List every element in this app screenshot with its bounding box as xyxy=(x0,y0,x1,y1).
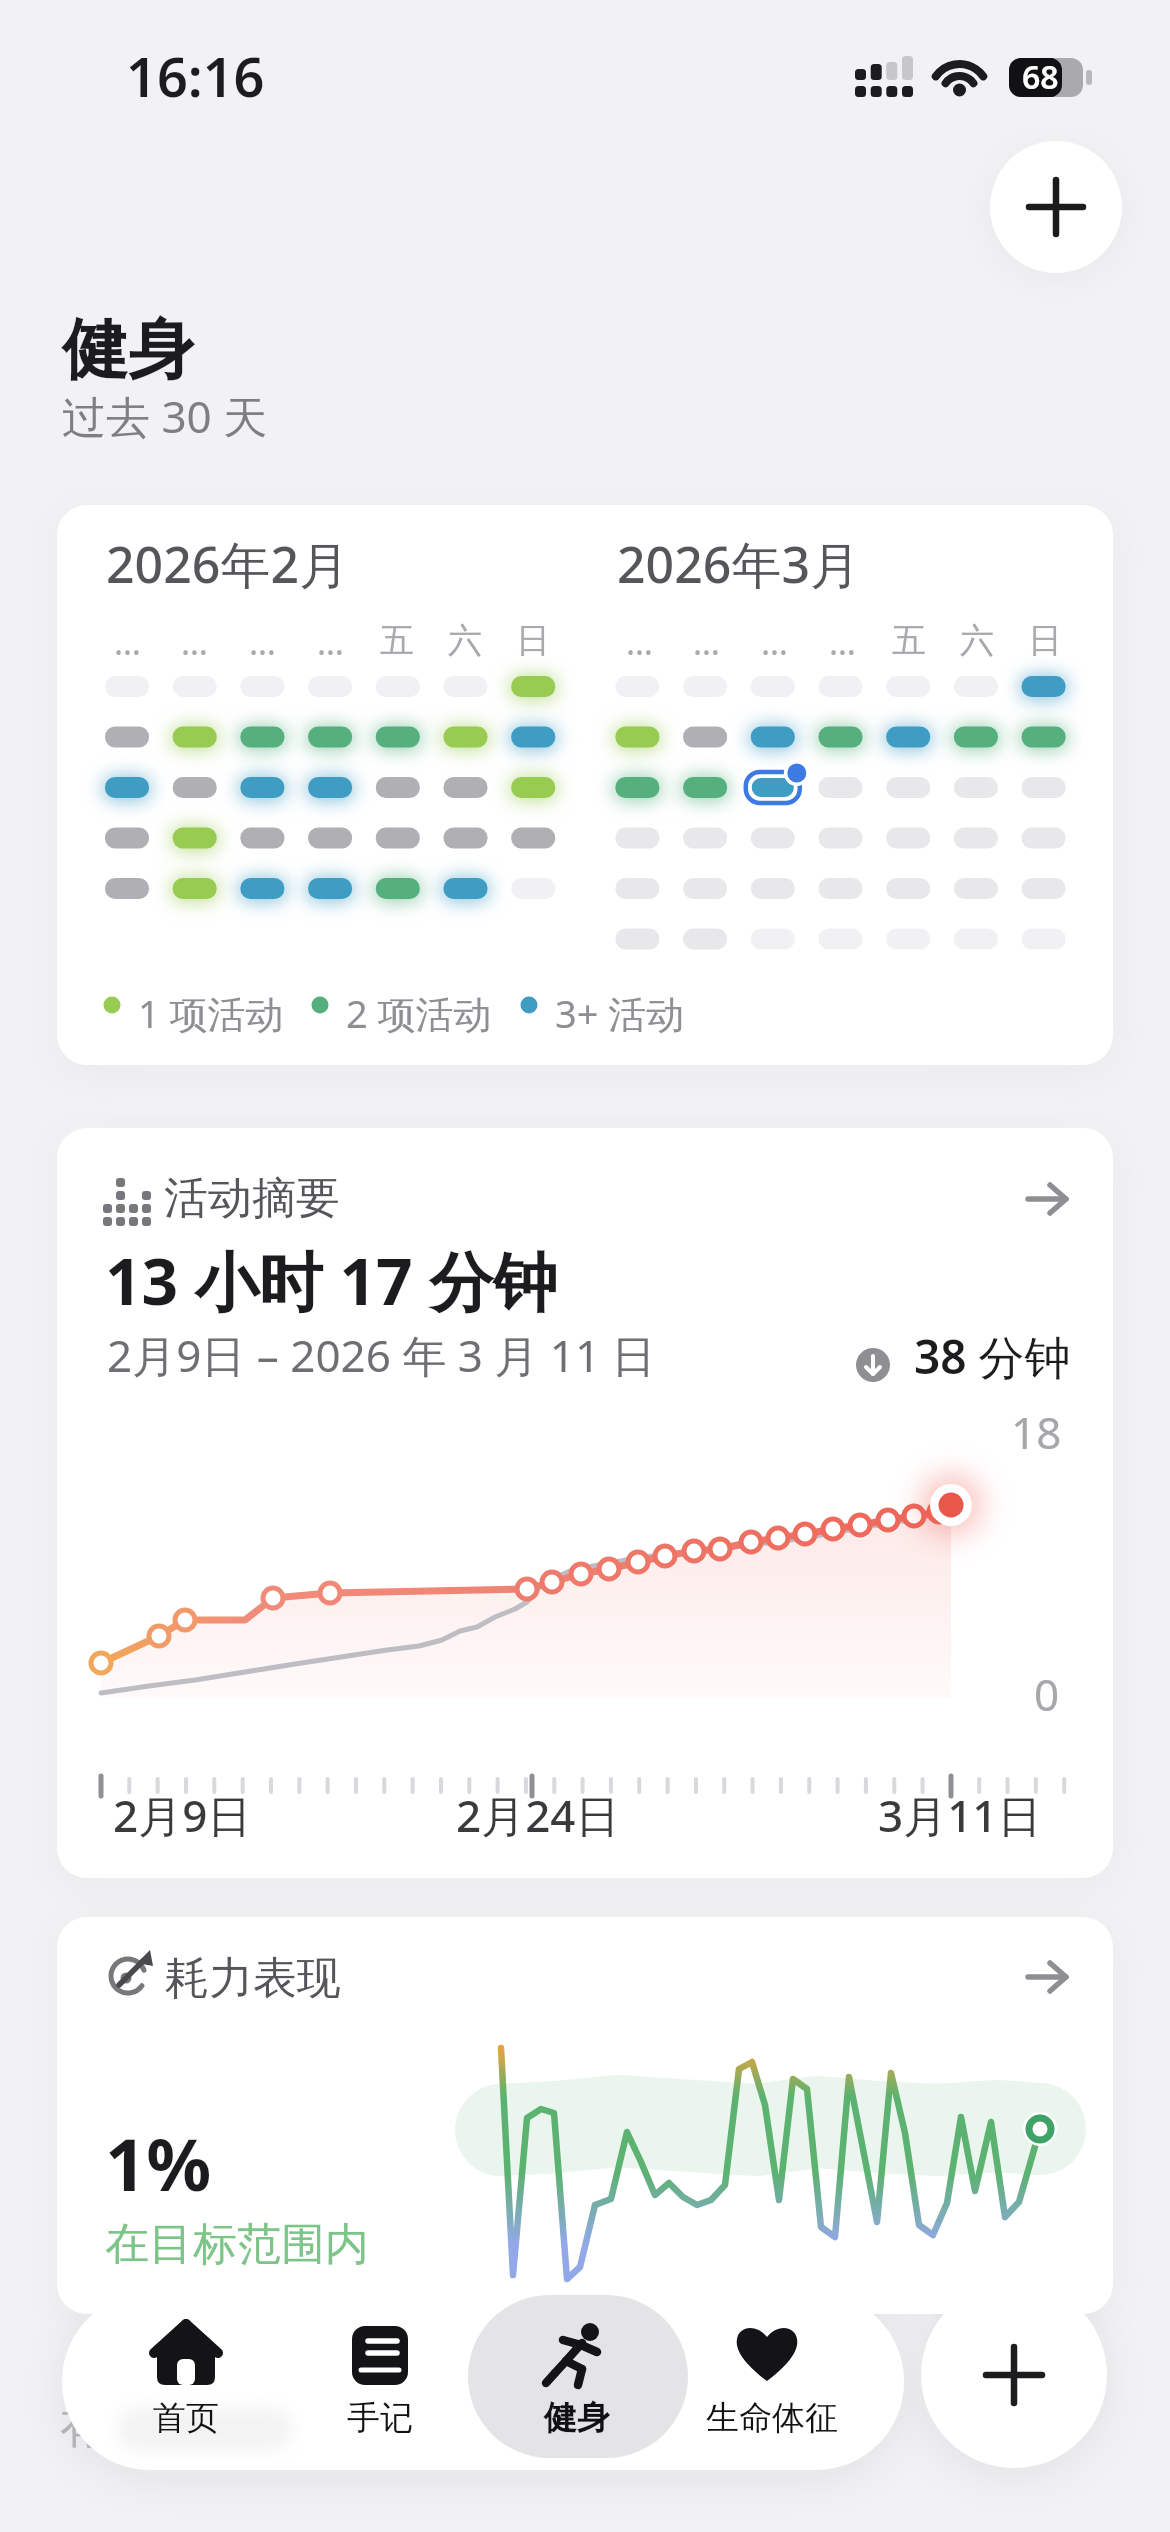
staticText: … xyxy=(693,619,720,665)
button[interactable]: 2026年2月 xyxy=(57,505,1113,1065)
staticText: 0 xyxy=(1034,1664,1060,1724)
staticText: … xyxy=(317,619,344,665)
staticText: … xyxy=(114,619,141,665)
staticText: 健身 xyxy=(62,308,194,391)
staticText: 首页 xyxy=(153,2397,219,2439)
staticText: 18 xyxy=(1011,1402,1062,1462)
button[interactable]: 生命体征 xyxy=(697,2293,847,2470)
staticText: 3+ 活动 xyxy=(555,987,685,1039)
staticText: 六 xyxy=(448,619,482,662)
staticText: 日 xyxy=(1028,619,1062,662)
staticText: 1 项活动 xyxy=(138,987,284,1039)
button[interactable] xyxy=(990,141,1122,273)
button[interactable]: 耗力表现 xyxy=(57,1917,1113,2314)
staticText: 活动摘要 xyxy=(164,1171,340,1226)
staticText: … xyxy=(829,619,856,665)
staticText: 过去 30 天 xyxy=(62,386,268,446)
button[interactable] xyxy=(921,2282,1107,2468)
staticText: 六 xyxy=(960,619,994,662)
staticText: 健身 xyxy=(544,2397,610,2439)
button[interactable]: 健身 xyxy=(502,2293,652,2470)
staticText: 有 xyxy=(60,2400,104,2455)
staticText: 3月11日 xyxy=(878,1785,1042,1845)
staticText: 16:16 xyxy=(126,39,265,113)
staticText: 2026年3月 xyxy=(617,530,860,598)
staticText: 五 xyxy=(892,619,926,662)
staticText: 日 xyxy=(516,619,550,662)
staticText: 1% xyxy=(105,2114,212,2212)
staticText: 手记 xyxy=(347,2397,413,2439)
staticText: 五 xyxy=(380,619,414,662)
button[interactable]: 手记 xyxy=(305,2293,455,2470)
staticText: … xyxy=(249,619,276,665)
staticText: 13 小时 17 分钟 xyxy=(105,1237,558,1324)
staticText: 68 xyxy=(1022,55,1059,99)
staticText: 2月9日 – 2026 年 3 月 11 日 xyxy=(107,1325,656,1385)
staticText: … xyxy=(626,619,653,665)
button[interactable]: 活动摘要 xyxy=(57,1128,1113,1878)
staticText: 2 项活动 xyxy=(346,987,492,1039)
staticText: 在目标范围内 xyxy=(105,2217,369,2272)
staticText: … xyxy=(761,619,788,665)
staticText: 2月24日 xyxy=(456,1785,620,1845)
staticText: … xyxy=(181,619,208,665)
staticText: 2月9日 xyxy=(113,1785,252,1845)
button[interactable]: 首页 xyxy=(111,2293,261,2470)
staticText: 38 分钟 xyxy=(914,1325,1071,1388)
staticText: 耗力表现 xyxy=(165,1951,341,2006)
staticText: 生命体征 xyxy=(706,2397,838,2439)
staticText: 2026年2月 xyxy=(106,530,349,598)
